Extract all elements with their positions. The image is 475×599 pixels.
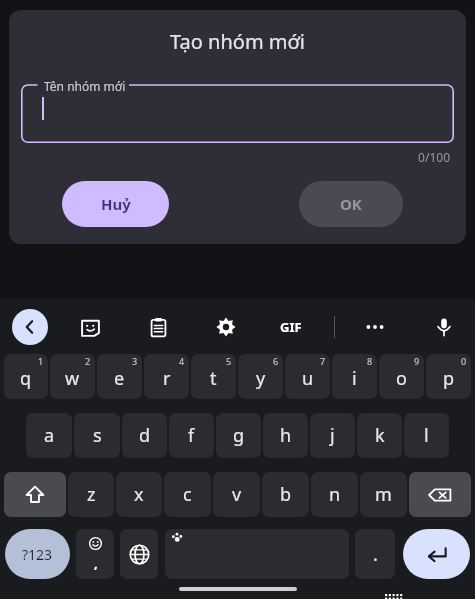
staticText: k xyxy=(375,423,385,448)
button[interactable]: Backspace xyxy=(409,472,471,517)
button[interactable]: g xyxy=(216,413,261,458)
staticText: u xyxy=(302,366,314,391)
button[interactable]: e xyxy=(97,354,142,399)
button[interactable]: Back xyxy=(12,309,48,345)
button[interactable]: l xyxy=(404,413,449,458)
staticText: 9 xyxy=(414,355,420,367)
button[interactable]: n xyxy=(311,472,358,517)
staticText: s xyxy=(93,423,102,448)
staticText: b xyxy=(280,482,292,507)
button[interactable]: t xyxy=(191,354,236,399)
button[interactable]: c xyxy=(164,472,211,517)
staticText: 7 xyxy=(320,355,326,367)
staticText: d xyxy=(139,423,151,448)
staticText: 5 xyxy=(226,355,232,367)
button[interactable]: . xyxy=(355,529,395,579)
staticText: l xyxy=(424,423,429,448)
button[interactable]: a xyxy=(26,413,72,458)
button[interactable]: Clipboard xyxy=(142,311,174,343)
button[interactable]: Shift xyxy=(4,472,66,517)
button[interactable]: More options xyxy=(359,311,391,343)
staticText: i xyxy=(352,366,357,391)
button[interactable]: y xyxy=(238,354,283,399)
staticText: 0/100 xyxy=(9,149,450,165)
button[interactable]: p xyxy=(426,354,471,399)
button[interactable]: Emoji and comma xyxy=(76,529,114,579)
staticText: Tạo nhóm mới xyxy=(9,28,466,55)
button[interactable]: q xyxy=(4,354,48,399)
staticText: m xyxy=(375,482,392,507)
button[interactable]: s xyxy=(74,413,120,458)
button[interactable]: GIF xyxy=(272,317,310,337)
staticText: y xyxy=(256,366,266,391)
staticText: . xyxy=(373,542,378,567)
staticText: 1 xyxy=(38,355,44,367)
staticText: q xyxy=(20,366,32,391)
button[interactable]: Settings xyxy=(210,311,242,343)
button[interactable]: u xyxy=(285,354,330,399)
staticText: 3 xyxy=(132,355,138,367)
button[interactable]: z xyxy=(68,472,114,517)
staticText: o xyxy=(396,366,407,391)
staticText: Huỷ xyxy=(101,194,131,214)
staticText: , xyxy=(94,554,98,572)
staticText: x xyxy=(134,482,144,507)
staticText: 8 xyxy=(367,355,373,367)
button[interactable]: m xyxy=(360,472,407,517)
button[interactable]: j xyxy=(310,413,355,458)
staticText: ?123 xyxy=(22,545,53,564)
button[interactable]: i xyxy=(332,354,377,399)
staticText: j xyxy=(330,423,335,448)
staticText: c xyxy=(183,482,192,507)
button[interactable]: Space xyxy=(165,529,349,579)
staticText: OK xyxy=(340,194,362,214)
staticText: p xyxy=(443,366,455,391)
button[interactable]: Stickers xyxy=(74,311,106,343)
staticText: 0 xyxy=(461,355,467,367)
button[interactable]: d xyxy=(122,413,167,458)
staticText: e xyxy=(114,366,125,391)
staticText: n xyxy=(329,482,341,507)
staticText: f xyxy=(188,423,195,448)
staticText: Tên nhóm mới xyxy=(44,78,126,94)
button[interactable]: Huỷ xyxy=(62,181,169,227)
button[interactable]: b xyxy=(262,472,309,517)
button[interactable]: OK xyxy=(299,181,403,227)
button[interactable]: r xyxy=(144,354,189,399)
button[interactable]: w xyxy=(50,354,95,399)
button[interactable]: h xyxy=(263,413,308,458)
staticText: g xyxy=(233,423,245,448)
button[interactable]: Voice input xyxy=(428,311,460,343)
staticText: t xyxy=(210,366,217,391)
button[interactable]: k xyxy=(357,413,402,458)
button[interactable]: ?123 xyxy=(5,529,70,579)
staticText: v xyxy=(232,482,242,507)
staticText: GIF xyxy=(280,318,302,336)
button[interactable]: v xyxy=(213,472,260,517)
staticText: 2 xyxy=(85,355,91,367)
button[interactable]: o xyxy=(379,354,424,399)
button[interactable]: Change language xyxy=(120,529,158,579)
staticText: 4 xyxy=(179,355,185,367)
staticText: 6 xyxy=(273,355,279,367)
staticText: r xyxy=(163,366,171,391)
button[interactable]: f xyxy=(169,413,214,458)
button[interactable]: Switch keyboard xyxy=(381,593,407,599)
staticText: h xyxy=(280,423,292,448)
staticText: z xyxy=(87,482,96,507)
staticText: w xyxy=(65,366,80,391)
staticText: a xyxy=(44,423,55,448)
button[interactable]: x xyxy=(116,472,162,517)
button[interactable]: Enter xyxy=(403,529,470,579)
